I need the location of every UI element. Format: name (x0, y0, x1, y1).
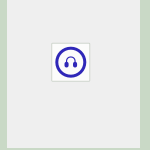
button[interactable]: Audio (52, 43, 90, 81)
